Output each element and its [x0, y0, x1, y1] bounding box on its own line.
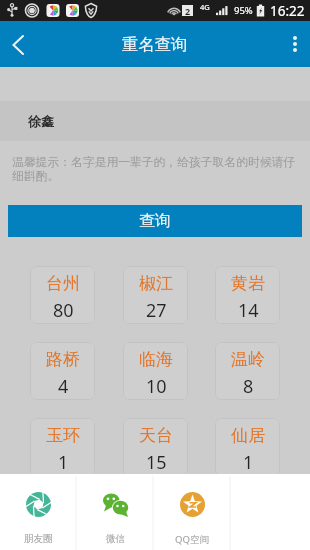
staticText: 14 [238, 298, 259, 323]
staticText: 玉环 [46, 425, 80, 446]
staticText: 查询 [139, 211, 171, 231]
staticText: 天台 [139, 425, 173, 446]
button[interactable]: 仙居 [215, 418, 280, 476]
staticText: 温岭 [231, 349, 265, 370]
staticText: 10 [146, 374, 167, 399]
staticText: 15 [146, 450, 167, 475]
staticText: 4G [200, 2, 210, 12]
button[interactable]: 朋友圈 [0, 474, 77, 550]
staticText: 8 [243, 374, 254, 399]
staticText: 椒江 [139, 273, 173, 294]
staticText: 黄岩 [231, 273, 265, 294]
staticText: 95% [234, 4, 253, 17]
staticText: 朋友圈 [24, 533, 53, 545]
staticText: 微信 [106, 533, 126, 545]
button[interactable]: 黄岩 [215, 266, 280, 324]
staticText: 1 [58, 450, 69, 475]
button[interactable]: 查询 [8, 205, 302, 237]
staticText: 2 [185, 5, 191, 16]
button[interactable]: 徐鑫 [0, 101, 310, 141]
button[interactable]: Back [0, 21, 36, 67]
button[interactable]: 微信 [77, 474, 154, 550]
button[interactable]: 台州 [30, 266, 95, 324]
staticText: 温馨提示：名字是用一辈子的，给孩子取名的时候请仔细斟酌。 [12, 155, 299, 184]
staticText: QQ空间 [175, 533, 210, 546]
staticText: 重名查询 [122, 34, 188, 55]
button[interactable]: 温岭 [215, 342, 280, 400]
staticText: 4 [58, 374, 69, 399]
staticText: 27 [146, 298, 167, 323]
staticText: 台州 [46, 273, 80, 294]
button[interactable]: 椒江 [123, 266, 188, 324]
staticText: 仙居 [231, 425, 265, 446]
button[interactable]: 天台 [123, 418, 188, 476]
staticText: 16:22 [270, 2, 305, 20]
staticText: 徐鑫 [28, 113, 54, 129]
button[interactable]: QQ空间 [154, 474, 231, 550]
button[interactable]: 玉环 [30, 418, 95, 476]
staticText: 临海 [139, 349, 173, 370]
staticText: 路桥 [46, 349, 80, 370]
button[interactable]: More options [280, 21, 310, 67]
button[interactable]: 临海 [123, 342, 188, 400]
staticText: 80 [53, 298, 74, 323]
staticText: 1 [243, 450, 254, 475]
button[interactable]: 路桥 [30, 342, 95, 400]
